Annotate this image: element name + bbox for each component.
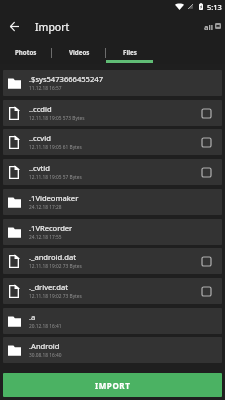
button[interactable]: .1Videomaker [3, 189, 222, 215]
button[interactable]: ..ccvid [3, 129, 222, 155]
staticText: Photos [15, 48, 37, 56]
staticText: Import [35, 20, 70, 34]
staticText: ..ccdid [29, 104, 52, 114]
button[interactable]: Select ._driver.dat [197, 282, 215, 300]
staticText: ._driver.dat [29, 282, 68, 292]
staticText: 11.12.18 16:57 [29, 85, 62, 92]
staticText: .$sys5473666455247 [29, 74, 103, 84]
button[interactable]: all [204, 12, 213, 41]
button[interactable]: ..cvtid [3, 159, 222, 185]
button[interactable]: Photos [0, 42, 52, 64]
button[interactable]: Back [10, 22, 19, 31]
staticText: 12.11.18 19:05 57 Bytes [29, 174, 82, 181]
staticText: .1Videomaker [29, 193, 79, 203]
staticText: .a [29, 312, 36, 322]
button[interactable]: Files [106, 42, 153, 64]
staticText: 24.12.18 17:28 [29, 204, 62, 211]
button[interactable]: Select ..ccvid [197, 133, 215, 151]
staticText: IMPORT [95, 380, 131, 391]
staticText: .Android [29, 341, 60, 351]
button[interactable]: ..ccdid [3, 100, 222, 126]
button[interactable]: Switch view [212, 20, 223, 31]
button[interactable]: .Android [3, 337, 222, 363]
staticText: 12.11.18 19:05 61 Bytes [29, 144, 82, 151]
staticText: 20.12.18 16:41 [29, 323, 62, 330]
staticText: ..cvtid [29, 163, 50, 173]
button[interactable]: .$sys5473666455247 [3, 70, 222, 96]
button[interactable]: Select ..cvtid [197, 163, 215, 181]
staticText: Videos [69, 48, 90, 56]
button[interactable]: Select ..ccdid [197, 104, 215, 122]
button[interactable]: .a [3, 308, 222, 334]
button[interactable]: ._android.dat [3, 248, 222, 274]
staticText: 12.11.18 19:05 573 Bytes [29, 115, 85, 122]
button[interactable]: IMPORT [3, 373, 222, 397]
button[interactable]: Videos [52, 42, 106, 64]
staticText: all [204, 22, 213, 32]
staticText: ..ccvid [29, 133, 51, 143]
button[interactable]: .1VRecorder [3, 219, 222, 245]
staticText: 30.08.18 16:40 [29, 352, 62, 359]
button[interactable]: Select ._android.dat [197, 252, 215, 270]
staticText: .1VRecorder [29, 223, 73, 233]
staticText: ._android.dat [29, 252, 76, 262]
staticText: Files [123, 48, 137, 56]
staticText: 24.12.18 17:55 [29, 234, 62, 241]
staticText: 5:13 [207, 2, 222, 12]
staticText: 12.11.18 19:02 73 Bytes [29, 293, 82, 300]
staticText: 12.11.18 19:02 73 Bytes [29, 263, 82, 270]
button[interactable]: ._driver.dat [3, 278, 222, 304]
